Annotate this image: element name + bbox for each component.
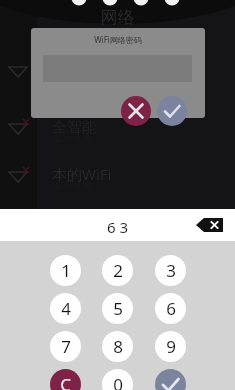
staticText: 1 bbox=[61, 259, 71, 282]
button[interactable]: 2 bbox=[102, 255, 133, 286]
staticText: 4 bbox=[61, 297, 71, 320]
staticText: C bbox=[60, 373, 71, 390]
staticText: 3 bbox=[166, 259, 176, 282]
staticText: 超出范围 bbox=[55, 180, 91, 191]
button[interactable]: Cancel bbox=[121, 96, 151, 126]
staticText: 7 bbox=[61, 335, 71, 358]
button[interactable]: 8 bbox=[102, 331, 133, 362]
button[interactable]: Confirm bbox=[155, 369, 186, 390]
staticText: WiFi网络密码 bbox=[31, 34, 205, 50]
button[interactable]: 3 bbox=[155, 255, 186, 286]
button[interactable]: C bbox=[50, 369, 81, 390]
staticText: 6 3 bbox=[0, 217, 235, 249]
staticText: 全智能 bbox=[52, 118, 97, 137]
staticText: 2 bbox=[113, 259, 123, 282]
staticText: 6 bbox=[166, 297, 176, 320]
button[interactable]: 7 bbox=[50, 331, 81, 362]
button[interactable]: 9 bbox=[155, 331, 186, 362]
staticText: 9 bbox=[166, 335, 176, 358]
staticText: 本的WiFi bbox=[52, 164, 112, 184]
button[interactable]: 6 bbox=[155, 293, 186, 324]
staticText: 网络 bbox=[0, 7, 235, 390]
staticText: 8 bbox=[113, 335, 123, 358]
button[interactable]: 0 bbox=[102, 369, 133, 390]
button[interactable]: 1 bbox=[50, 255, 81, 286]
staticText: 5 bbox=[113, 297, 123, 320]
button[interactable]: 5 bbox=[102, 293, 133, 324]
button[interactable]: Confirm bbox=[157, 96, 187, 126]
button[interactable]: 4 bbox=[50, 293, 81, 324]
button[interactable]: Backspace bbox=[196, 215, 226, 235]
staticText: 0 bbox=[113, 373, 123, 390]
